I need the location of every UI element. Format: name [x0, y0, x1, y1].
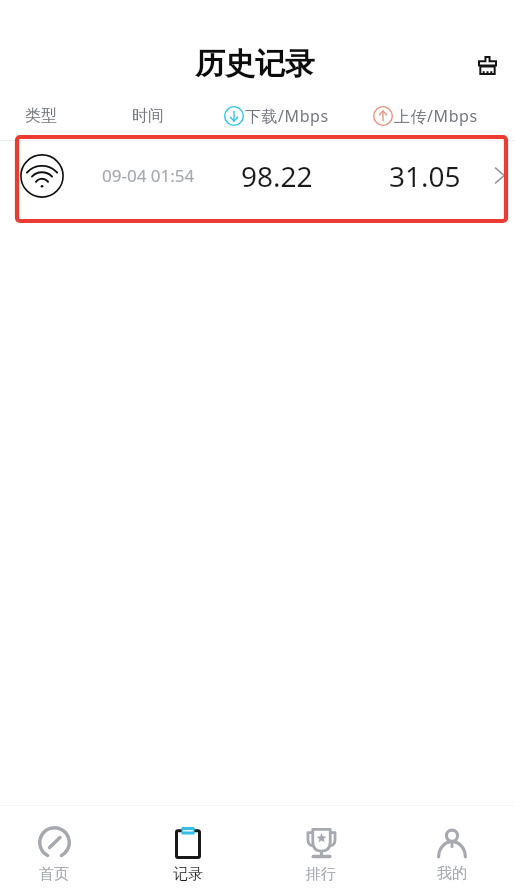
- button[interactable]: 首页: [9, 812, 99, 892]
- button[interactable]: 我的: [407, 812, 497, 892]
- staticText: 类型: [25, 106, 57, 126]
- staticText: 31.05: [389, 157, 461, 195]
- staticText: 排行: [306, 865, 336, 884]
- staticText: 记录: [173, 865, 203, 884]
- staticText: 下载/Mbps: [245, 105, 329, 127]
- staticText: 09-04 01:54: [102, 164, 195, 187]
- staticText: 首页: [39, 865, 69, 884]
- button[interactable]: Clear history: [467, 45, 508, 86]
- staticText: 98.22: [241, 157, 313, 195]
- button[interactable]: 记录: [143, 812, 233, 892]
- staticText: 时间: [132, 106, 164, 126]
- staticText: 上传/Mbps: [394, 105, 478, 127]
- button[interactable]: 排行: [276, 812, 366, 892]
- staticText: 历史记录: [195, 45, 315, 83]
- staticText: 我的: [437, 864, 467, 883]
- button[interactable]: 09-04 01:54: [0, 137, 515, 214]
